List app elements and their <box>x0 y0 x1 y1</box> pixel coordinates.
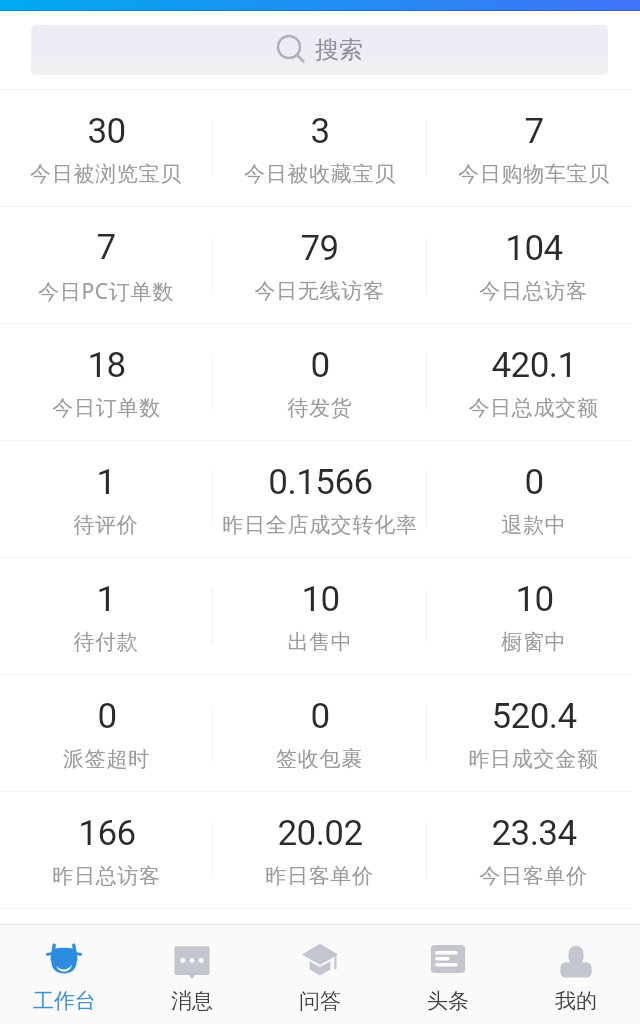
staticText: 昨日全店成交转化率 <box>222 512 418 538</box>
staticText: 签收包裹 <box>276 746 363 772</box>
staticText: 30 <box>87 111 126 152</box>
staticText: 我的 <box>555 988 597 1014</box>
staticText: 工作台 <box>33 988 96 1014</box>
other: Messages <box>172 939 212 979</box>
button[interactable]: 1 <box>0 558 212 674</box>
staticText: 今日总访客 <box>479 278 588 304</box>
staticText: 待付款 <box>73 629 139 655</box>
button[interactable]: 420.1 <box>427 324 640 440</box>
staticText: 出售中 <box>287 629 353 655</box>
staticText: 今日被浏览宝贝 <box>30 161 182 187</box>
staticText: 派签超时 <box>63 746 150 772</box>
button[interactable]: 23.34 <box>427 792 640 908</box>
button[interactable]: 0 <box>213 675 426 791</box>
other: Headlines <box>428 939 468 979</box>
button[interactable]: 520.4 <box>427 675 640 791</box>
button[interactable]: 104 <box>427 207 640 323</box>
button[interactable]: 搜索 <box>31 25 608 75</box>
staticText: 今日订单数 <box>52 395 161 421</box>
staticText: 今日无线访客 <box>254 278 385 304</box>
staticText: 23.34 <box>491 813 577 854</box>
button[interactable]: 0 <box>427 441 640 557</box>
button[interactable]: 0 <box>213 324 426 440</box>
staticText: 昨日客单价 <box>265 863 374 889</box>
button[interactable]: Q and A <box>256 925 384 1024</box>
staticText: 头条 <box>427 988 469 1014</box>
staticText: 退款中 <box>501 512 567 538</box>
staticText: 0 <box>524 462 544 503</box>
staticText: 今日PC订单数 <box>38 277 174 306</box>
button[interactable]: Headlines <box>384 925 512 1024</box>
staticText: 104 <box>505 228 563 269</box>
staticText: 今日客单价 <box>479 863 588 889</box>
staticText: 0 <box>97 696 117 737</box>
button[interactable]: 79 <box>213 207 426 323</box>
staticText: 18 <box>87 345 126 386</box>
staticText: 待评价 <box>73 512 139 538</box>
staticText: 昨日总访客 <box>52 863 161 889</box>
staticText: 166 <box>78 813 136 854</box>
button[interactable]: 20.02 <box>213 792 426 908</box>
button[interactable]: 0 <box>0 675 212 791</box>
button[interactable]: Profile <box>512 925 640 1024</box>
staticText: 10 <box>301 579 340 620</box>
button[interactable]: 10 <box>427 558 640 674</box>
button[interactable]: 1 <box>0 441 212 557</box>
staticText: 3 <box>310 111 330 152</box>
button[interactable]: 0.1566 <box>213 441 426 557</box>
staticText: 0.1566 <box>268 462 373 503</box>
staticText: 1 <box>96 462 116 503</box>
staticText: 橱窗中 <box>501 629 567 655</box>
staticText: 今日被收藏宝贝 <box>244 161 396 187</box>
button[interactable]: 7 <box>427 90 640 206</box>
button[interactable]: 3 <box>213 90 426 206</box>
staticText: 520.4 <box>491 696 577 737</box>
other: Q and A <box>300 939 340 979</box>
staticText: 420.1 <box>491 345 577 386</box>
staticText: 今日总成交额 <box>468 395 599 421</box>
other: Workbench <box>44 939 84 979</box>
staticText: 搜索 <box>315 35 363 65</box>
staticText: 10 <box>515 579 554 620</box>
staticText: 待发货 <box>287 395 353 421</box>
staticText: 今日购物车宝贝 <box>458 161 610 187</box>
staticText: 0 <box>310 696 330 737</box>
staticText: 7 <box>96 227 116 268</box>
button[interactable]: 7 <box>0 207 212 323</box>
staticText: 79 <box>300 228 339 269</box>
staticText: 7 <box>524 111 544 152</box>
button[interactable]: Workbench <box>0 925 128 1024</box>
staticText: 问答 <box>299 988 341 1014</box>
other: Profile <box>556 939 596 979</box>
button[interactable]: 18 <box>0 324 212 440</box>
staticText: 昨日成交金额 <box>468 746 599 772</box>
button[interactable]: 30 <box>0 90 212 206</box>
staticText: 20.02 <box>277 813 363 854</box>
staticText: 1 <box>96 579 116 620</box>
staticText: 消息 <box>171 988 213 1014</box>
button[interactable]: Messages <box>128 925 256 1024</box>
button[interactable]: 10 <box>213 558 426 674</box>
staticText: 0 <box>310 345 330 386</box>
button[interactable]: 166 <box>0 792 212 908</box>
